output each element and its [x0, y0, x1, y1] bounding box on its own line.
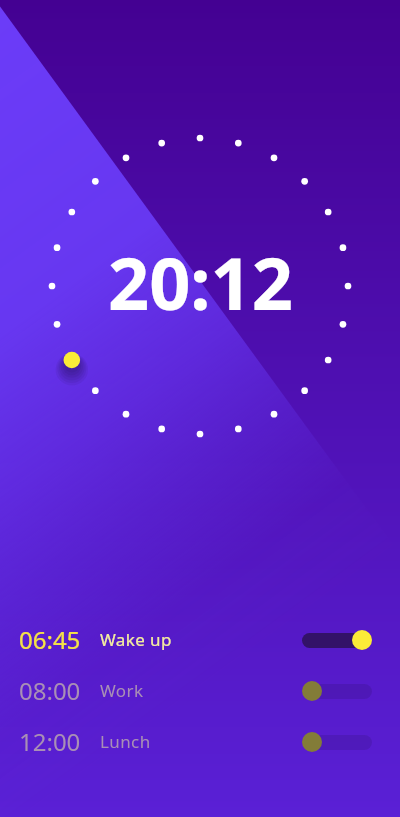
staticText: 06:45	[19, 623, 81, 656]
button[interactable]: 12:00	[0, 716, 400, 767]
button[interactable]: 08:00	[0, 665, 400, 716]
staticText: 12:00	[19, 725, 81, 758]
staticText: Wake up	[100, 628, 172, 651]
staticText: Work	[100, 679, 144, 702]
button[interactable]: 06:45	[0, 614, 400, 665]
button[interactable]: Turn alarm on	[302, 731, 372, 753]
button[interactable]: Turn alarm off	[302, 629, 372, 651]
staticText: 08:00	[19, 674, 81, 707]
staticText: 20:12	[108, 233, 293, 331]
button[interactable]: Turn alarm on	[302, 680, 372, 702]
staticText: Lunch	[100, 730, 151, 753]
